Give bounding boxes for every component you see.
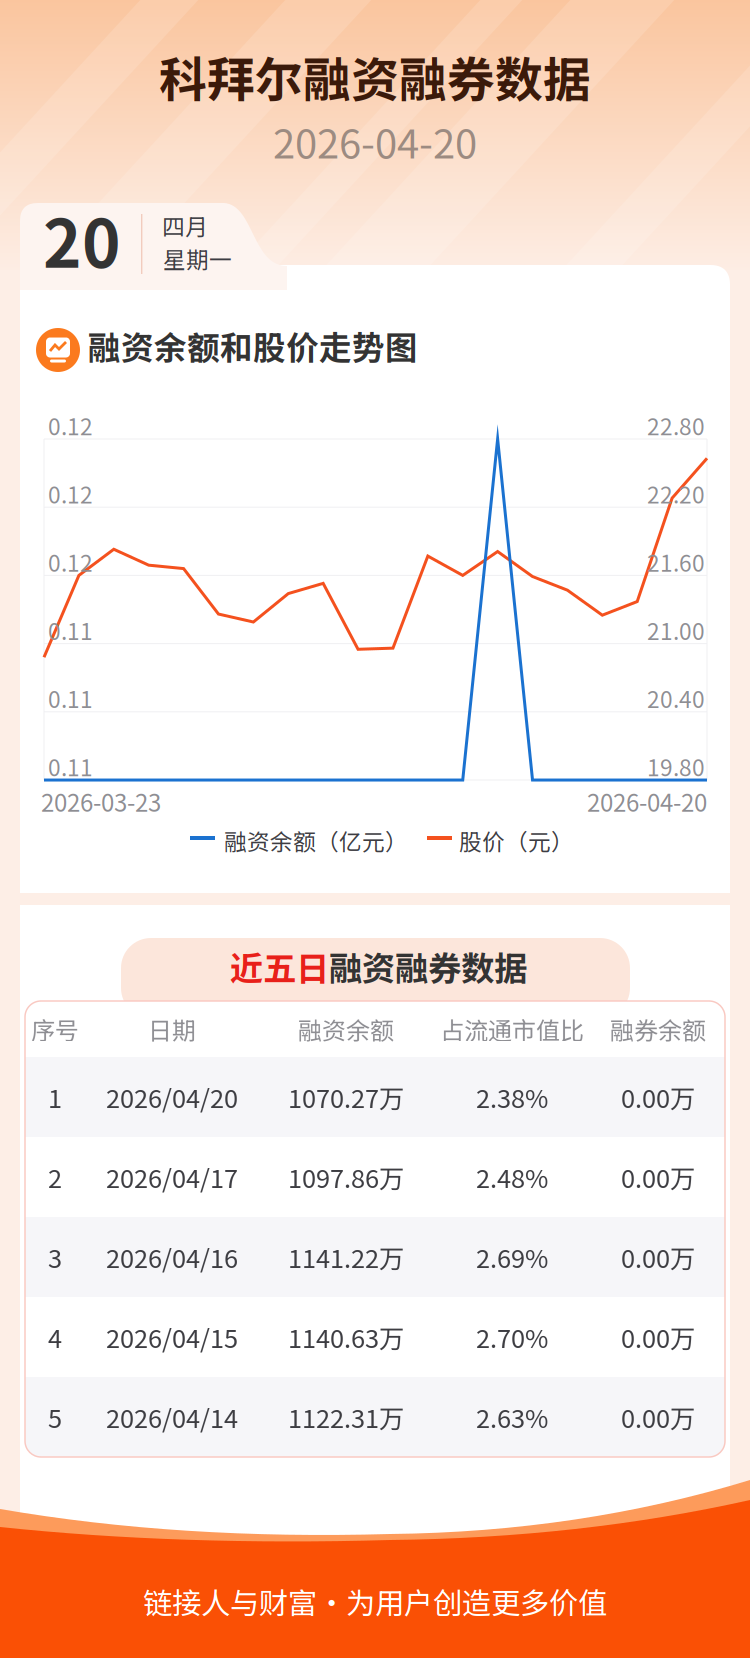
staticText: 0.00万 [621, 1159, 695, 1195]
staticText: 5 [48, 1399, 62, 1435]
staticText: 22.80 [647, 409, 705, 442]
staticText: 2026/04/14 [106, 1399, 238, 1435]
staticText: 链接人与财富·为用户创造更多价值 [143, 1580, 607, 1622]
staticText: 2026-04-20 [587, 784, 707, 819]
staticText: 2026/04/17 [106, 1159, 238, 1195]
staticText: 2.38% [476, 1079, 548, 1115]
staticText: 21.60 [647, 545, 705, 578]
staticText: 0.00万 [621, 1319, 695, 1355]
staticText: 序号 [31, 1012, 79, 1046]
staticText: 融资余额 [298, 1012, 394, 1046]
staticText: 0.11 [48, 682, 93, 715]
staticText: 20 [43, 192, 121, 287]
staticText: 19.80 [647, 750, 705, 783]
staticText: 0.00万 [621, 1399, 695, 1435]
staticText: 1070.27万 [288, 1079, 404, 1115]
staticText: 星期一 [163, 242, 232, 275]
staticText: 2.69% [476, 1239, 548, 1275]
staticText: 2.63% [476, 1399, 548, 1435]
staticText: 1122.31万 [288, 1399, 404, 1435]
staticText: 1141.22万 [288, 1239, 404, 1275]
staticText: 0.00万 [621, 1079, 695, 1115]
staticText: 股价（元） [459, 824, 574, 857]
staticText: 4 [48, 1319, 62, 1355]
staticText: 四月 [162, 209, 208, 242]
staticText: 占流通市值比 [440, 1012, 584, 1046]
staticText: 2 [48, 1159, 62, 1195]
staticText: 1140.63万 [288, 1319, 404, 1355]
staticText: 近五日 [230, 942, 329, 990]
staticText: 融券余额 [610, 1012, 706, 1046]
staticText: 0.11 [48, 614, 93, 646]
staticText: 日期 [148, 1012, 196, 1046]
staticText: 2026-04-20 [273, 112, 477, 170]
staticText: 融资余额（亿元） [224, 824, 408, 857]
staticText: 2026/04/20 [106, 1079, 238, 1115]
staticText: 1097.86万 [288, 1159, 404, 1195]
staticText: 3 [48, 1239, 62, 1275]
staticText: 1 [48, 1079, 62, 1115]
staticText: 0.12 [48, 477, 93, 510]
staticText: 融资余额和股价走势图 [88, 322, 418, 369]
staticText: 2.70% [476, 1319, 548, 1355]
staticText: 融资融券数据 [329, 942, 527, 990]
staticText: 0.00万 [621, 1239, 695, 1275]
staticText: 0.12 [48, 545, 93, 578]
staticText: 22.20 [647, 477, 705, 510]
staticText: 2.48% [476, 1159, 548, 1195]
staticText: 2026/04/16 [106, 1239, 238, 1275]
staticText: 科拜尔融资融券数据 [159, 42, 591, 111]
staticText: 20.40 [647, 682, 705, 715]
staticText: 2026-03-23 [41, 784, 161, 819]
staticText: 21.00 [647, 614, 705, 646]
staticText: 2026/04/15 [106, 1319, 238, 1355]
staticText: 0.11 [48, 750, 93, 783]
staticText: 0.12 [48, 409, 93, 442]
